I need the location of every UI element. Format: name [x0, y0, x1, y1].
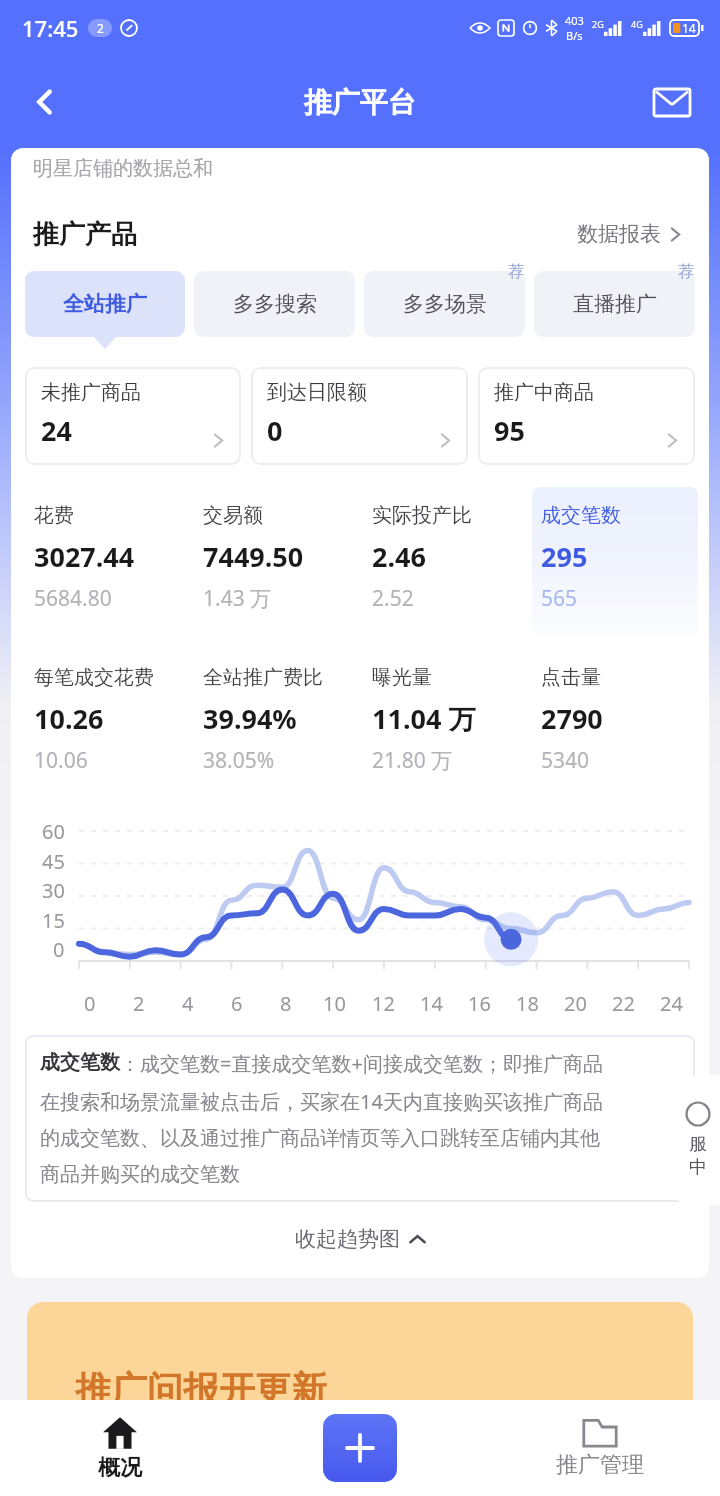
staticText: 4	[182, 990, 194, 1017]
staticText: 每笔成交花费	[34, 665, 154, 690]
staticText: 2.52	[372, 584, 414, 613]
button[interactable]: 推广问报开更新	[27, 1302, 693, 1412]
staticText: 荐	[508, 262, 524, 282]
staticText: 明星店铺的数据总和	[33, 156, 213, 181]
staticText: 10	[323, 990, 346, 1017]
staticText: ：成交笔数=直接成交笔数+间接成交笔数；即推广商品	[120, 1050, 603, 1077]
staticText: 数据报表	[577, 221, 661, 247]
button[interactable]: 全站推广	[25, 271, 185, 337]
staticText: 8	[280, 990, 292, 1017]
staticText: 概况	[98, 1454, 142, 1482]
staticText: 403	[565, 13, 584, 28]
staticText: 22	[612, 990, 635, 1017]
staticText: 6	[231, 990, 243, 1017]
staticText: 2	[97, 20, 104, 36]
button[interactable]: 全站推广费比	[191, 649, 360, 789]
button[interactable]: 推广中商品	[478, 367, 695, 465]
staticText: 点击量	[541, 665, 601, 690]
button[interactable]: Messages	[644, 74, 700, 130]
staticText: B/s	[566, 28, 583, 43]
staticText: 1.43 万	[203, 584, 272, 613]
staticText: 565	[541, 584, 578, 613]
staticText: 10.26	[34, 700, 104, 737]
staticText: 30	[42, 877, 65, 904]
staticText: 95	[494, 412, 525, 449]
staticText: 15	[42, 907, 65, 934]
staticText: 0	[53, 936, 65, 963]
staticText: 多多场景	[403, 291, 487, 317]
staticText: 7449.50	[203, 538, 304, 575]
staticText: 14	[420, 990, 443, 1017]
staticText: 推广中商品	[494, 380, 594, 405]
staticText: 2.46	[372, 538, 426, 575]
button[interactable]: 多多场景	[364, 271, 525, 337]
staticText: 2790	[541, 700, 603, 737]
staticText: 14	[682, 20, 696, 36]
staticText: 17:45	[22, 13, 79, 43]
staticText: 直播推广	[573, 291, 657, 317]
staticText: 39.94%	[203, 700, 297, 737]
staticText: 全站推广	[63, 291, 147, 317]
staticText: 在搜索和场景流量被点击后，买家在14天内直接购买该推广商品	[40, 1088, 603, 1115]
button[interactable]: Back	[18, 75, 72, 129]
button[interactable]: 花费	[22, 487, 191, 627]
staticText: 服	[689, 1133, 707, 1156]
staticText: 3027.44	[34, 538, 135, 575]
staticText: 2G	[592, 18, 604, 30]
button[interactable]: 数据报表	[573, 217, 687, 251]
staticText: 24	[41, 412, 72, 449]
staticText: 多多搜索	[233, 291, 317, 317]
staticText: 中	[689, 1156, 707, 1179]
staticText: 45	[42, 848, 65, 875]
staticText: 10.06	[34, 746, 88, 775]
staticText: 24	[660, 990, 683, 1017]
staticText: 60	[42, 818, 65, 845]
button[interactable]: 概况	[0, 1400, 240, 1496]
button[interactable]: 未推广商品	[25, 367, 241, 465]
staticText: 0	[267, 412, 283, 449]
button[interactable]: 点击量	[529, 649, 698, 789]
staticText: 4G	[631, 18, 643, 30]
staticText: 商品并购买的成交笔数	[40, 1162, 240, 1187]
button[interactable]: 交易额	[191, 487, 360, 627]
staticText: 20	[564, 990, 587, 1017]
staticText: 交易额	[203, 503, 263, 528]
staticText: 5340	[541, 746, 590, 775]
staticText: 实际投产比	[372, 503, 472, 528]
staticText: 成交笔数	[541, 503, 621, 528]
staticText: 推广产品	[33, 218, 137, 251]
button[interactable]: 成交笔数	[529, 487, 698, 627]
staticText: 成交笔数	[40, 1050, 120, 1075]
staticText: 收起趋势图	[295, 1226, 400, 1252]
button[interactable]: 每笔成交花费	[22, 649, 191, 789]
button[interactable]: 客服中心	[666, 1075, 720, 1205]
button[interactable]: 新建推广	[323, 1414, 397, 1482]
staticText: 21.80 万	[372, 746, 453, 775]
staticText: 12	[372, 990, 395, 1017]
staticText: 18	[516, 990, 539, 1017]
staticText: 的成交笔数、以及通过推广商品详情页等入口跳转至店铺内其他	[40, 1126, 600, 1151]
staticText: 全站推广费比	[203, 665, 323, 690]
staticText: 295	[541, 538, 588, 575]
staticText: 花费	[34, 503, 74, 528]
button[interactable]: 实际投产比	[360, 487, 529, 627]
button[interactable]: 推广管理	[480, 1400, 720, 1496]
button[interactable]: 收起趋势图	[11, 1222, 709, 1256]
button[interactable]: 曝光量	[360, 649, 529, 789]
staticText: 2	[133, 990, 145, 1017]
button[interactable]: 多多搜索	[194, 271, 355, 337]
button[interactable]: 到达日限额	[251, 367, 468, 465]
staticText: 0	[84, 990, 96, 1017]
button[interactable]: 直播推广	[534, 271, 695, 337]
staticText: 推广平台	[304, 85, 416, 120]
staticText: 未推广商品	[41, 380, 141, 405]
staticText: 5684.80	[34, 584, 112, 613]
staticText: 曝光量	[372, 665, 432, 690]
staticText: 推广管理	[556, 1451, 644, 1479]
staticText: 荐	[678, 262, 694, 282]
staticText: 到达日限额	[267, 380, 367, 405]
staticText: 38.05%	[203, 746, 275, 775]
staticText: 11.04 万	[372, 700, 476, 737]
staticText: 16	[468, 990, 491, 1017]
staticText: 推广问报开更新	[75, 1367, 327, 1412]
